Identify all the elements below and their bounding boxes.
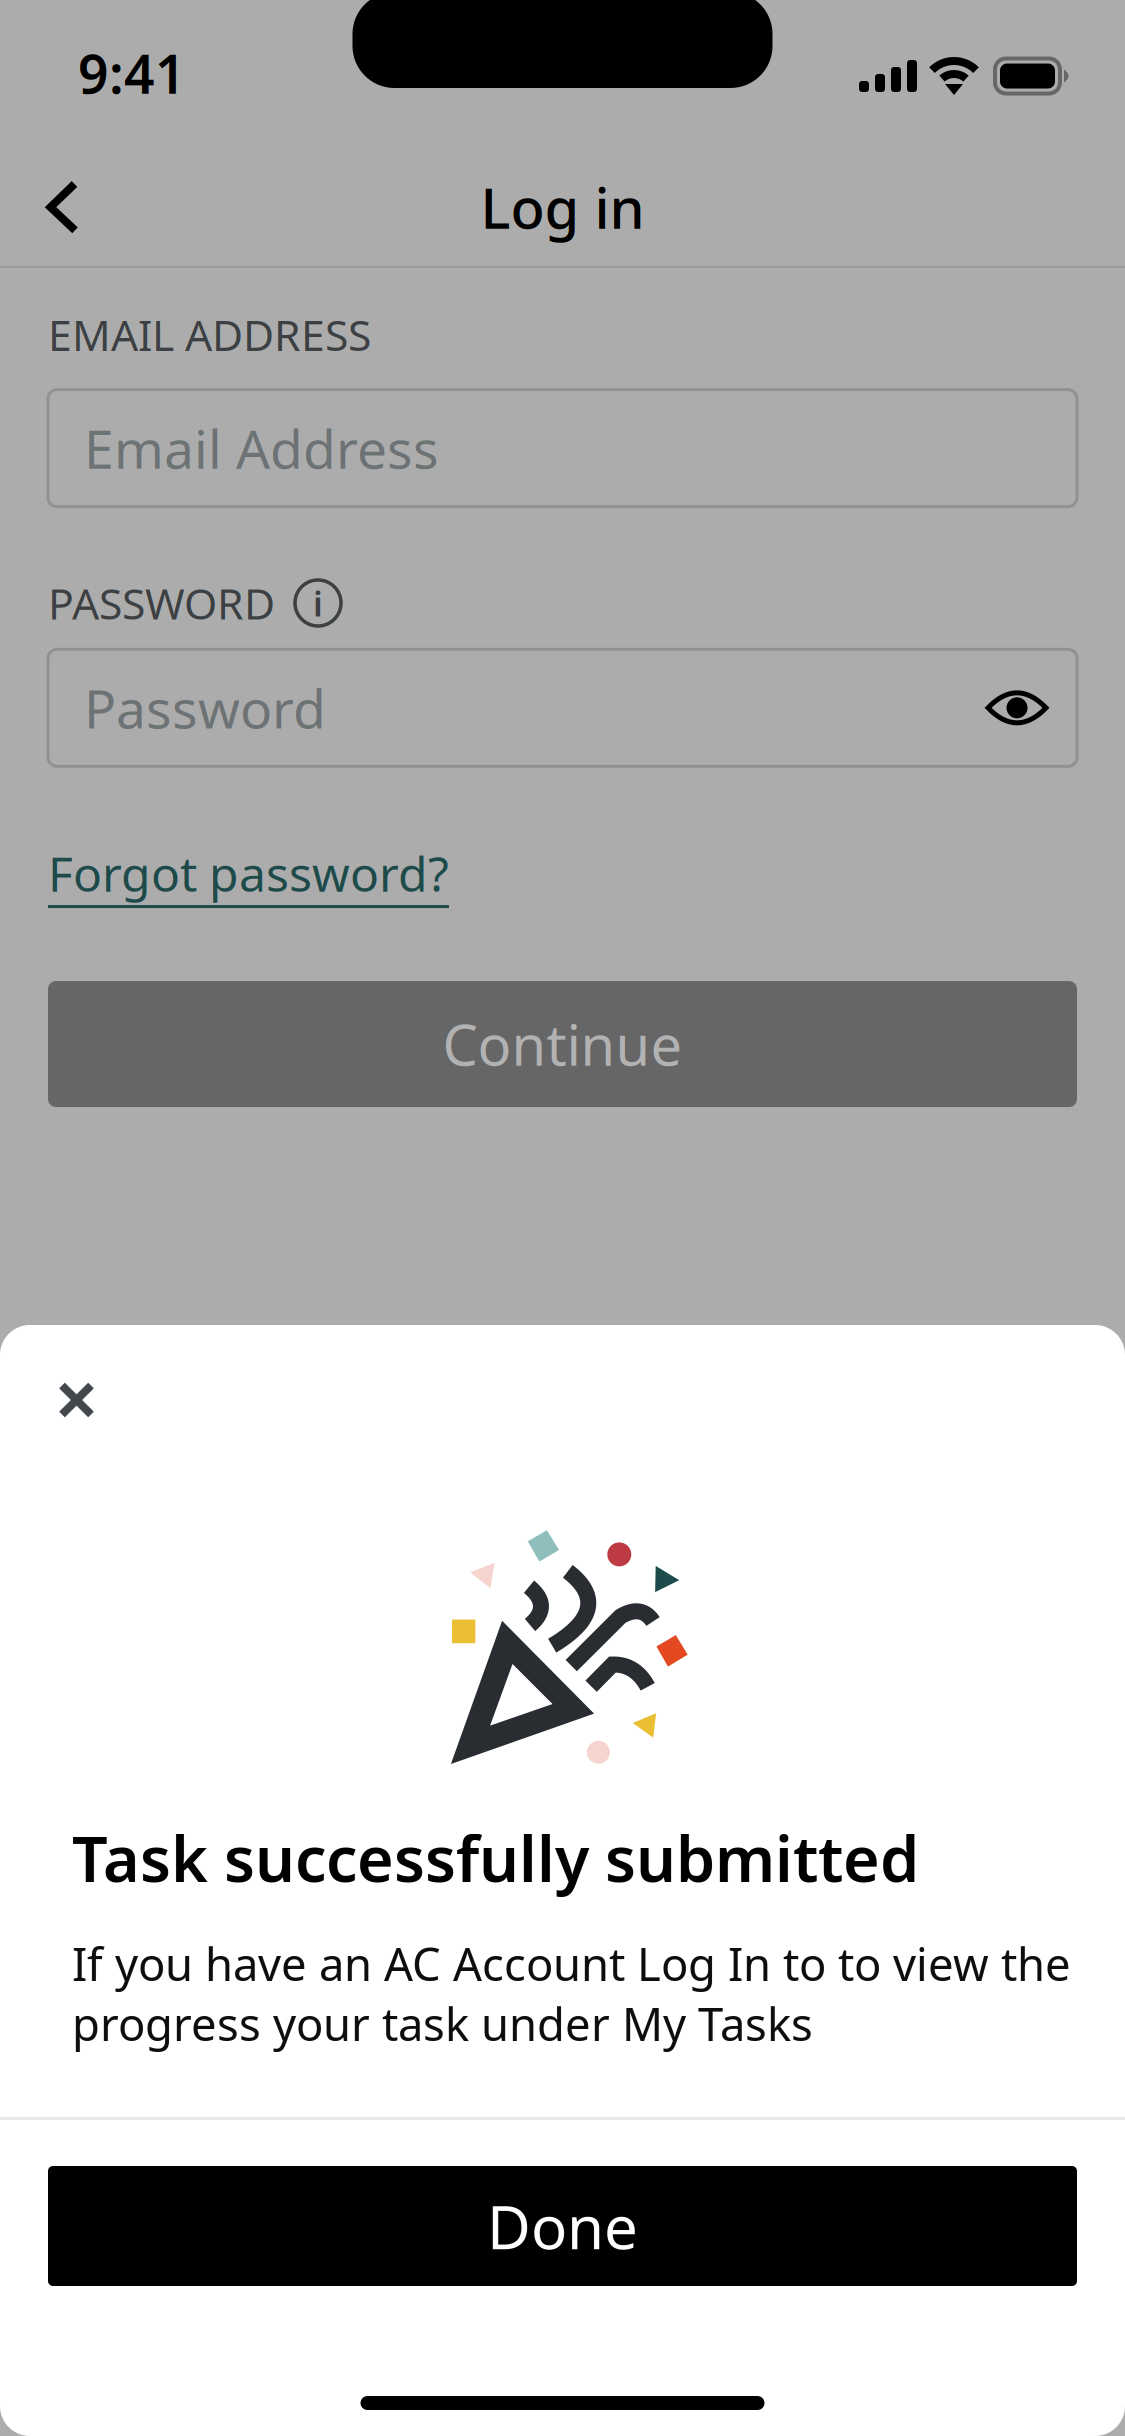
staticText: Done bbox=[487, 2186, 638, 2266]
button[interactable]: Close bbox=[58, 1358, 146, 1442]
button[interactable]: Back bbox=[0, 152, 126, 262]
button[interactable]: Forgot password? bbox=[48, 841, 449, 908]
button[interactable]: Done bbox=[48, 2166, 1077, 2286]
staticText: Log in bbox=[480, 170, 644, 244]
staticText: Email Address bbox=[84, 413, 439, 483]
staticText: EMAIL ADDRESS bbox=[48, 306, 371, 363]
staticText: Forgot password? bbox=[48, 841, 449, 905]
staticText: PASSWORD bbox=[48, 575, 275, 631]
staticText: 9:41 bbox=[78, 38, 186, 108]
staticText: Password bbox=[84, 672, 326, 743]
staticText: i bbox=[313, 580, 323, 626]
staticText: Continue bbox=[442, 1007, 682, 1081]
staticText: Task successfully submitted bbox=[72, 1816, 919, 1899]
staticText: If you have an AC Account Log In to to v… bbox=[72, 1933, 1071, 2054]
button[interactable]: Continue bbox=[48, 981, 1077, 1107]
